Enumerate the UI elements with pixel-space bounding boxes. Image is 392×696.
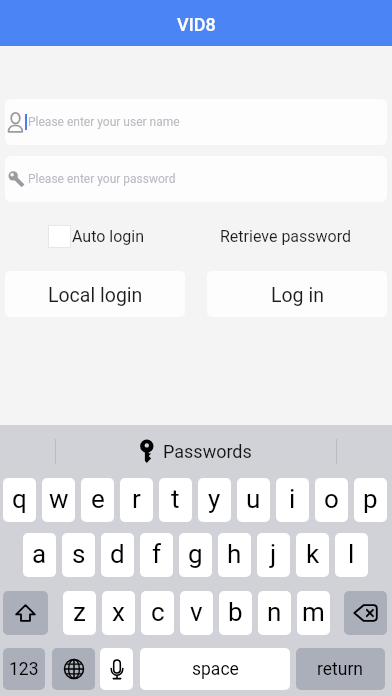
- staticText: m: [302, 597, 325, 627]
- staticText: j: [270, 539, 277, 569]
- button[interactable]: Log in: [207, 271, 387, 317]
- staticText: Please enter your password: [28, 172, 176, 186]
- staticText: i: [289, 484, 296, 514]
- other: Shift: [15, 604, 36, 622]
- staticText: t: [171, 484, 180, 514]
- staticText: v: [190, 597, 203, 627]
- button[interactable]: p: [354, 478, 387, 522]
- button[interactable]: i: [276, 478, 309, 522]
- button[interactable]: Local login: [5, 271, 185, 317]
- staticText: g: [188, 539, 203, 569]
- button[interactable]: t: [159, 478, 192, 522]
- button[interactable]: l: [335, 533, 368, 577]
- button[interactable]: d: [101, 533, 134, 577]
- button[interactable]: Auto login: [48, 225, 145, 248]
- staticText: u: [246, 484, 261, 514]
- button[interactable]: return: [296, 648, 385, 690]
- button[interactable]: m: [297, 591, 330, 635]
- button[interactable]: g: [179, 533, 212, 577]
- button[interactable]: k: [296, 533, 329, 577]
- button[interactable]: q: [3, 478, 36, 522]
- staticText: Passwords: [163, 441, 252, 462]
- staticText: x: [112, 597, 125, 627]
- button[interactable]: w: [42, 478, 75, 522]
- button[interactable]: Change keyboard: [52, 648, 95, 690]
- staticText: o: [324, 484, 339, 514]
- staticText: e: [91, 484, 105, 514]
- button[interactable]: f: [140, 533, 173, 577]
- button[interactable]: z: [63, 591, 96, 635]
- staticText: s: [72, 539, 86, 569]
- staticText: w: [49, 484, 69, 514]
- button[interactable]: c: [141, 591, 174, 635]
- staticText: c: [151, 597, 165, 627]
- staticText: f: [152, 539, 162, 569]
- staticText: VID8: [177, 14, 216, 35]
- button[interactable]: a: [23, 533, 56, 577]
- staticText: q: [12, 484, 27, 514]
- button[interactable]: b: [219, 591, 252, 635]
- staticText: return: [317, 659, 364, 680]
- button[interactable]: Shift: [3, 591, 48, 635]
- staticText: b: [228, 597, 243, 627]
- staticText: r: [132, 484, 141, 514]
- button[interactable]: n: [258, 591, 291, 635]
- button[interactable]: Retrieve password: [220, 227, 352, 246]
- button[interactable]: 123: [3, 648, 45, 690]
- button[interactable]: o: [315, 478, 348, 522]
- button[interactable]: r: [120, 478, 153, 522]
- other: Backspace: [353, 604, 378, 622]
- staticText: Log in: [271, 284, 324, 307]
- button[interactable]: space: [140, 648, 290, 690]
- button[interactable]: e: [81, 478, 114, 522]
- button[interactable]: s: [62, 533, 95, 577]
- button[interactable]: v: [180, 591, 213, 635]
- staticText: k: [306, 539, 320, 569]
- staticText: n: [267, 597, 282, 627]
- staticText: Please enter your user name: [28, 115, 180, 129]
- button[interactable]: Dictation: [100, 648, 133, 690]
- button[interactable]: y: [198, 478, 231, 522]
- button[interactable]: j: [257, 533, 290, 577]
- staticText: z: [73, 597, 86, 627]
- staticText: Local login: [48, 284, 143, 307]
- button[interactable]: h: [218, 533, 251, 577]
- staticText: a: [32, 539, 47, 569]
- button[interactable]: Please enter your password: [5, 156, 387, 202]
- button[interactable]: Passwords: [140, 439, 252, 464]
- staticText: h: [227, 539, 242, 569]
- staticText: l: [348, 539, 355, 569]
- button[interactable]: u: [237, 478, 270, 522]
- button[interactable]: x: [102, 591, 135, 635]
- staticText: Auto login: [72, 227, 145, 246]
- button[interactable]: Backspace: [344, 591, 387, 635]
- staticText: space: [192, 659, 239, 680]
- button[interactable]: Please enter your user name: [5, 99, 387, 145]
- staticText: d: [110, 539, 125, 569]
- staticText: 123: [9, 659, 39, 680]
- staticText: p: [363, 484, 378, 514]
- staticText: y: [208, 484, 221, 514]
